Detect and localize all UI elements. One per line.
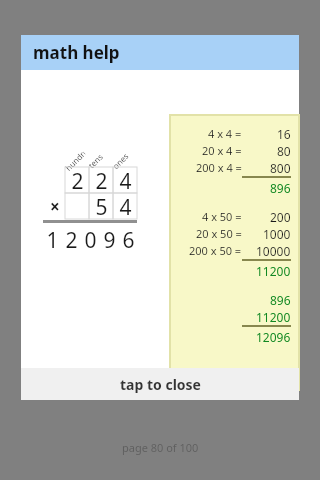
staticText: page 80 of 100 xyxy=(122,440,199,455)
staticText: 800 xyxy=(270,160,291,176)
staticText: 20 x 50 = xyxy=(196,226,242,241)
staticText: 4 x 50 = xyxy=(202,209,242,224)
staticText: math help xyxy=(33,41,120,64)
staticText: 2 xyxy=(65,226,78,252)
staticText: 896 xyxy=(270,292,291,308)
staticText: ones xyxy=(110,150,131,171)
staticText: 20 x 4 = xyxy=(202,143,242,158)
staticText: 5 xyxy=(95,193,108,219)
staticText: 4 x 4 = xyxy=(208,126,242,141)
staticText: 2 xyxy=(95,167,108,193)
staticText: 1 xyxy=(46,226,59,252)
staticText: hundreds xyxy=(63,148,87,173)
staticText: 4 xyxy=(119,167,132,193)
staticText: 80 xyxy=(277,143,291,159)
staticText: 2 xyxy=(71,167,84,193)
staticText: 11200 xyxy=(256,263,291,279)
staticText: tens xyxy=(86,151,105,170)
staticText: 896 xyxy=(270,180,291,196)
staticText: 10000 xyxy=(256,243,291,259)
staticText: 200 x 50 = xyxy=(189,243,242,258)
staticText: 200 xyxy=(270,209,291,225)
staticText: 200 x 4 = xyxy=(196,160,242,175)
button[interactable]: tap to close xyxy=(21,368,299,400)
staticText: 9 xyxy=(103,226,116,252)
staticText: 1000 xyxy=(263,226,291,242)
button[interactable]: math help xyxy=(21,35,299,70)
staticText: tap to close xyxy=(120,375,201,394)
staticText: 4 xyxy=(119,193,132,219)
staticText: 12096 xyxy=(256,329,291,345)
staticText: × xyxy=(50,195,60,218)
staticText: 0 xyxy=(84,226,97,252)
staticText: 16 xyxy=(277,126,291,142)
staticText: 6 xyxy=(122,226,135,252)
staticText: 11200 xyxy=(256,309,291,325)
